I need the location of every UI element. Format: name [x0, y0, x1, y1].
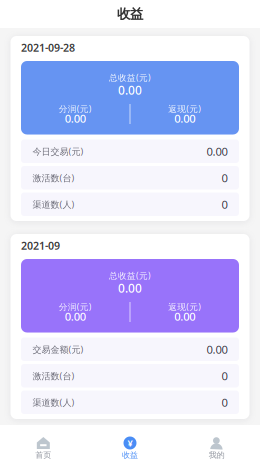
- staticText: 0.00: [206, 341, 227, 357]
- staticText: 激活数(台): [32, 370, 74, 382]
- button[interactable]: 今日交易(元): [21, 139, 239, 163]
- staticText: 分润(元): [59, 103, 92, 115]
- staticText: 0.00: [174, 308, 195, 324]
- staticText: 0: [221, 368, 227, 383]
- staticText: 激活数(台): [32, 172, 74, 184]
- staticText: 0.00: [174, 110, 195, 126]
- staticText: 0.00: [65, 110, 86, 126]
- button[interactable]: 我的: [173, 425, 260, 462]
- button[interactable]: 渠道数(人): [21, 390, 239, 414]
- button[interactable]: 激活数(台): [21, 364, 239, 387]
- button[interactable]: 交易金额(元): [21, 337, 239, 361]
- staticText: 0: [221, 394, 227, 410]
- staticText: 0: [221, 170, 227, 185]
- staticText: 渠道数(人): [32, 198, 74, 210]
- button[interactable]: 首页: [0, 425, 87, 462]
- staticText: 返现(元): [168, 103, 201, 115]
- staticText: 渠道数(人): [32, 396, 74, 408]
- staticText: 0.00: [118, 82, 142, 98]
- button[interactable]: 激活数(台): [21, 166, 239, 189]
- staticText: 总收益(元): [109, 270, 151, 281]
- staticText: 2021-09: [21, 238, 60, 253]
- button[interactable]: 渠道数(人): [21, 192, 239, 216]
- staticText: 今日交易(元): [32, 145, 83, 157]
- staticText: 2021-09-28: [21, 40, 75, 55]
- staticText: 收益: [122, 450, 138, 460]
- staticText: 0.00: [65, 308, 86, 324]
- staticText: 交易金额(元): [32, 343, 83, 355]
- staticText: 分润(元): [59, 301, 92, 313]
- staticText: 0.00: [118, 280, 142, 296]
- staticText: 我的: [209, 450, 225, 460]
- button[interactable]: ¥: [87, 425, 173, 462]
- staticText: 收益: [117, 6, 143, 22]
- staticText: ¥: [127, 437, 132, 449]
- staticText: 0.00: [206, 143, 227, 159]
- staticText: 0: [221, 196, 227, 212]
- staticText: 总收益(元): [109, 72, 151, 83]
- staticText: 首页: [35, 450, 51, 460]
- staticText: 返现(元): [168, 301, 201, 313]
